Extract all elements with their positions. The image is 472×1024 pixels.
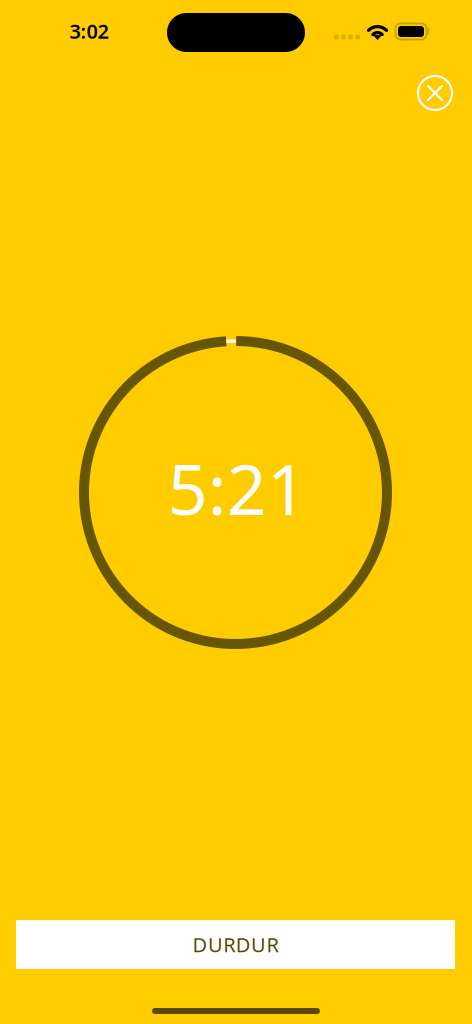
staticText: DURDUR (192, 931, 278, 958)
staticText: 5:21 (168, 442, 307, 534)
staticText: 3:02 (69, 18, 108, 44)
button[interactable]: DURDUR (16, 920, 455, 969)
button[interactable]: Close (413, 71, 457, 115)
